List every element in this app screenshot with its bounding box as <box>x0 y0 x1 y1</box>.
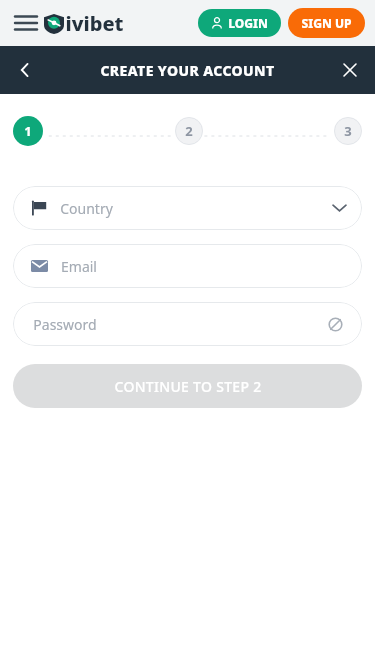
button[interactable]: LOGIN <box>198 9 281 37</box>
button[interactable]: CONTINUE TO STEP 2 <box>13 364 362 408</box>
button[interactable]: Country <box>13 186 362 230</box>
staticText: Email <box>61 257 97 276</box>
button[interactable]: Menu <box>8 5 44 41</box>
staticText: 1 <box>24 122 32 140</box>
staticText: ivibet <box>65 10 124 37</box>
staticText: CONTINUE TO STEP 2 <box>114 377 262 396</box>
staticText: Country <box>60 199 113 218</box>
button[interactable]: ivibet <box>44 10 124 37</box>
button[interactable]: 2 <box>175 117 203 145</box>
staticText: LOGIN <box>228 15 268 31</box>
staticText: 3 <box>344 122 352 140</box>
button[interactable]: Password <box>13 302 362 346</box>
button[interactable]: SIGN UP <box>288 8 365 38</box>
button[interactable]: 3 <box>334 117 362 145</box>
staticText: 2 <box>185 122 193 140</box>
button[interactable]: Close <box>331 51 369 89</box>
staticText: Password <box>33 315 97 334</box>
button[interactable]: Back <box>6 51 44 89</box>
staticText: SIGN UP <box>301 15 352 31</box>
button[interactable]: Email <box>13 244 362 288</box>
button[interactable]: 1 <box>13 116 43 146</box>
staticText: CREATE YOUR ACCOUNT <box>100 61 275 80</box>
button[interactable]: Show password <box>324 313 346 335</box>
